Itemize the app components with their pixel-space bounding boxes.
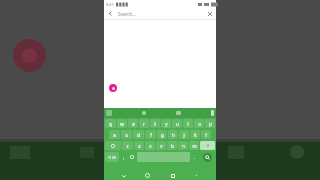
staticText: f xyxy=(150,132,152,138)
staticText: . xyxy=(194,154,196,161)
staticText: e xyxy=(132,121,135,127)
button[interactable]: g xyxy=(157,130,167,139)
button[interactable]: Record xyxy=(109,84,117,92)
button[interactable]: j xyxy=(179,130,189,139)
button[interactable]: ?123 xyxy=(105,152,119,162)
staticText: i xyxy=(187,121,189,127)
button[interactable]: f xyxy=(145,130,156,139)
button[interactable]: o xyxy=(194,119,204,128)
button[interactable]: Clear xyxy=(206,10,213,17)
button[interactable]: u xyxy=(172,119,182,128)
staticText: a xyxy=(113,132,116,138)
staticText: r xyxy=(143,121,145,127)
staticText: x xyxy=(138,143,141,149)
button[interactable]: i xyxy=(183,119,193,128)
staticText: g xyxy=(161,132,164,138)
button[interactable]: s xyxy=(121,130,132,139)
staticText: , xyxy=(123,154,125,161)
staticText: c xyxy=(149,143,152,149)
staticText: j xyxy=(183,132,185,138)
button[interactable]: r xyxy=(139,119,149,128)
button[interactable]: k xyxy=(190,130,200,139)
staticText: ?123 xyxy=(108,155,116,160)
staticText: d xyxy=(137,132,140,138)
button[interactable]: More xyxy=(211,110,214,116)
staticText: k xyxy=(194,132,197,138)
staticText: 9:41 xyxy=(106,2,114,7)
button[interactable]: v xyxy=(156,141,166,150)
staticText: u xyxy=(176,121,179,127)
button[interactable]: Shift xyxy=(105,141,121,150)
button[interactable]: Home xyxy=(142,171,153,180)
button[interactable]: t xyxy=(150,119,160,128)
button[interactable]: Emoji xyxy=(106,110,112,116)
staticText: h xyxy=(172,132,175,138)
button[interactable]: Recents xyxy=(167,171,178,180)
button[interactable]: More xyxy=(191,171,202,180)
button[interactable]: z xyxy=(122,141,133,150)
button[interactable]: q xyxy=(105,119,116,128)
button[interactable]: l xyxy=(201,130,211,139)
staticText: v xyxy=(160,143,163,149)
staticText: b xyxy=(171,143,174,149)
staticText: y xyxy=(165,121,168,127)
button[interactable]: b xyxy=(167,141,177,150)
staticText: w xyxy=(120,121,124,127)
button[interactable]: c xyxy=(145,141,155,150)
button[interactable]: e xyxy=(128,119,138,128)
button[interactable]: y xyxy=(161,119,171,128)
staticText: l xyxy=(205,132,207,138)
staticText: t xyxy=(154,121,156,127)
staticText: p xyxy=(209,121,212,127)
staticText: m xyxy=(192,143,197,149)
button[interactable]: h xyxy=(168,130,178,139)
staticText: z xyxy=(126,143,129,149)
button[interactable]: p xyxy=(205,119,215,128)
button[interactable]: x xyxy=(134,141,144,150)
staticText: n xyxy=(182,143,185,149)
button[interactable]: Voice input xyxy=(128,152,136,162)
button[interactable]: Period xyxy=(191,152,198,162)
button[interactable]: Back xyxy=(107,10,114,17)
button[interactable]: m xyxy=(189,141,199,150)
button[interactable]: Back xyxy=(104,8,216,19)
button[interactable]: Back xyxy=(118,171,129,180)
staticText: s xyxy=(125,132,128,138)
button[interactable]: w xyxy=(117,119,127,128)
button[interactable]: Settings xyxy=(142,111,146,115)
button[interactable]: d xyxy=(133,130,144,139)
staticText: o xyxy=(198,121,201,127)
button[interactable]: Backspace xyxy=(200,141,215,150)
staticText: q xyxy=(109,121,112,127)
button[interactable]: Search xyxy=(203,153,212,162)
button[interactable]: n xyxy=(178,141,188,150)
button[interactable]: Comma xyxy=(120,152,127,162)
staticText: Search... xyxy=(118,11,136,17)
button[interactable]: Clipboard xyxy=(176,111,181,115)
button[interactable]: a xyxy=(109,130,120,139)
